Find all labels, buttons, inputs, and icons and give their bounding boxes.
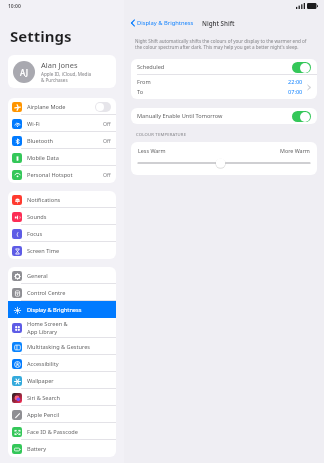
staticText: 22:00 (288, 78, 303, 86)
button[interactable]: Bluetooth (8, 132, 116, 149)
button[interactable]: Display & Brightness (8, 301, 116, 318)
button[interactable]: Face ID & Passcode (8, 423, 116, 440)
staticText: Focus (27, 230, 43, 238)
button[interactable]: Apple Pencil (8, 406, 116, 423)
staticText: Wi-Fi (27, 120, 40, 128)
staticText: Notifications (27, 196, 61, 204)
button[interactable]: Wallpaper (8, 372, 116, 389)
staticText: 07:00 (288, 88, 303, 96)
button[interactable]: Back (129, 17, 195, 29)
staticText: More Warm (280, 147, 310, 154)
staticText: Apple ID, iCloud, Media & Purchases (41, 71, 92, 83)
staticText: Control Centre (27, 289, 66, 297)
button[interactable]: Personal Hotspot (8, 166, 116, 183)
button[interactable]: Accessibility (8, 355, 116, 372)
staticText: Siri & Search (27, 394, 60, 402)
button[interactable]: Focus (8, 225, 116, 242)
staticText: Settings (10, 26, 72, 46)
staticText: Home Screen & (27, 320, 68, 328)
button[interactable]: Control Centre (8, 284, 116, 301)
staticText: Accessibility (27, 360, 59, 368)
button[interactable]: Notifications (8, 191, 116, 208)
staticText: Display & Brightness (137, 19, 194, 27)
staticText: To (137, 88, 144, 96)
button[interactable]: Colour temperature slider (138, 158, 310, 168)
staticText: Display & Brightness (27, 306, 82, 314)
button[interactable]: General (8, 267, 116, 284)
staticText: Face ID & Passcode (27, 428, 78, 436)
button[interactable]: Manually Enable Until Tomorrow (131, 108, 317, 124)
button[interactable]: Wi-Fi (8, 115, 116, 132)
staticText: Mobile Data (27, 154, 59, 162)
staticText: App Library (27, 328, 58, 336)
staticText: Manually Enable Until Tomorrow (137, 112, 292, 120)
button[interactable]: Screen Time (8, 242, 116, 259)
button[interactable]: Sounds (8, 208, 116, 225)
staticText: From (137, 78, 151, 86)
staticText: Less Warm (138, 147, 166, 154)
staticText: 10:00 (8, 3, 21, 10)
button[interactable]: Toggle (292, 111, 311, 122)
staticText: Night Shift (202, 19, 235, 27)
staticText: Airplane Mode (27, 103, 66, 111)
staticText: General (27, 272, 48, 280)
staticText: Alan Jones (41, 60, 78, 70)
button[interactable]: Battery (8, 440, 116, 457)
staticText: Battery (27, 445, 47, 453)
other: Back (130, 19, 136, 27)
button[interactable]: Multitasking & Gestures (8, 338, 116, 355)
button[interactable]: Toggle (95, 102, 111, 112)
staticText: COLOUR TEMPERATURE (136, 132, 187, 138)
staticText: Apple Pencil (27, 411, 60, 419)
button[interactable]: Toggle (292, 62, 311, 73)
button[interactable]: Siri & Search (8, 389, 116, 406)
staticText: Wallpaper (27, 377, 54, 385)
button[interactable]: AJ (8, 55, 116, 88)
staticText: AJ (20, 67, 28, 78)
staticText: Screen Time (27, 247, 60, 255)
button[interactable]: Mobile Data (8, 149, 116, 166)
button[interactable]: Scheduled (131, 59, 317, 75)
staticText: Scheduled (137, 63, 292, 71)
staticText: Bluetooth (27, 137, 53, 145)
staticText: Off (103, 171, 111, 178)
staticText: Personal Hotspot (27, 171, 73, 179)
staticText: Night Shift automatically shifts the col… (135, 38, 313, 50)
staticText: Multitasking & Gestures (27, 343, 91, 351)
button[interactable]: Home Screen & (8, 318, 116, 338)
button[interactable]: From (131, 75, 317, 99)
staticText: Sounds (27, 213, 47, 221)
button[interactable]: Airplane Mode (8, 98, 116, 115)
staticText: Off (103, 120, 111, 127)
staticText: Off (103, 137, 111, 144)
